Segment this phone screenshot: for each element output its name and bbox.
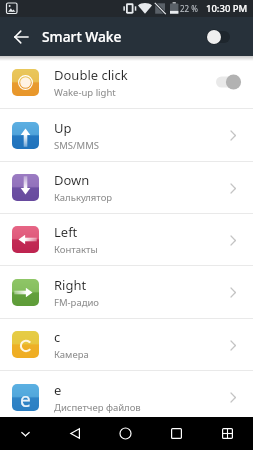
staticText: Контакты [54,243,98,256]
button[interactable]: Double click [0,56,253,108]
staticText: 22 % [180,3,198,14]
staticText: Right [54,276,87,294]
staticText: 10:30 PM [206,2,248,15]
button[interactable]: Up [0,109,253,161]
staticText: Smart Wake [42,27,122,46]
button[interactable]: Back [50,417,100,450]
button[interactable]: Toggle wake-up light [211,70,247,94]
staticText: Wake-up light [54,86,116,99]
button[interactable]: c [0,319,253,370]
button[interactable]: Home [100,417,151,450]
button[interactable]: Down [0,162,253,213]
staticText: Down [54,171,90,189]
staticText: SMS/MMS [54,139,100,152]
staticText: Up [54,119,72,137]
staticText: Камера [54,348,89,361]
staticText: Диспетчер файлов [54,401,141,414]
staticText: Left [54,223,78,241]
button[interactable]: e [0,371,253,423]
staticText: e [54,381,62,399]
staticText: e [20,387,31,411]
button[interactable]: Right [0,266,253,318]
button[interactable]: Navigate up [7,23,35,51]
staticText: FM-радио [54,296,99,309]
button[interactable]: Split screen [202,417,253,450]
staticText: c [54,328,61,346]
staticText: Double click [54,66,128,84]
staticText: Калькулятор [54,191,113,204]
button[interactable]: Hide keyboard [0,417,50,450]
button[interactable]: Enable Smart Wake [206,27,232,47]
button[interactable]: Left [0,214,253,265]
button[interactable]: Recent apps [151,417,202,450]
